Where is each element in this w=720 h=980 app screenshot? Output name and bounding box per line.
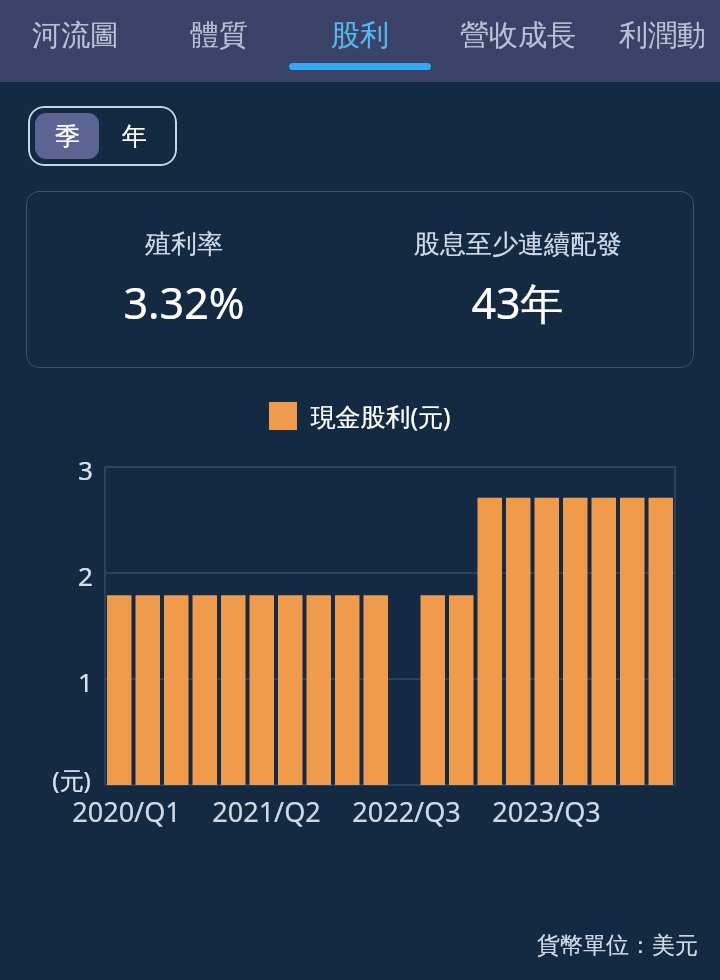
staticText: 年 xyxy=(122,121,147,152)
button[interactable]: 利潤動 xyxy=(604,0,720,82)
staticText: 貨幣單位：美元 xyxy=(537,931,698,960)
button[interactable]: 股利 xyxy=(288,0,432,82)
button[interactable]: 年 xyxy=(99,113,170,159)
staticText: 43年 xyxy=(471,273,564,332)
staticText: (元) xyxy=(52,763,91,796)
button[interactable]: 殖利率 xyxy=(26,191,694,368)
staticText: 2 xyxy=(78,558,93,593)
button[interactable]: 河流圖 xyxy=(0,0,150,82)
staticText: 營收成長 xyxy=(460,17,576,54)
button[interactable]: 體質 xyxy=(150,0,288,82)
staticText: 殖利率 xyxy=(145,228,223,261)
staticText: 2020/Q1 xyxy=(72,793,181,830)
staticText: 河流圖 xyxy=(32,17,119,54)
staticText: 利潤動 xyxy=(619,17,706,54)
staticText: 2023/Q3 xyxy=(492,793,601,830)
staticText: 2022/Q3 xyxy=(352,793,461,830)
staticText: 3 xyxy=(78,452,93,487)
staticText: 體質 xyxy=(190,17,248,54)
staticText: 3.32% xyxy=(123,273,245,332)
staticText: 2021/Q2 xyxy=(212,793,321,830)
button[interactable]: 營收成長 xyxy=(432,0,604,82)
staticText: 股利 xyxy=(331,17,389,54)
staticText: 現金股利(元) xyxy=(310,399,451,433)
button[interactable]: 季 xyxy=(35,113,99,159)
staticText: 1 xyxy=(78,664,93,699)
staticText: 股息至少連續配發 xyxy=(414,228,622,261)
staticText: 季 xyxy=(55,121,80,152)
